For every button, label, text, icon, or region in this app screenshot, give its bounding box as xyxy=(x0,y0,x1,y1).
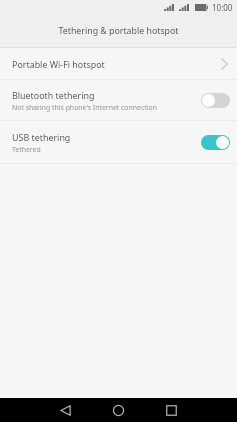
staticText: Portable Wi-Fi hotspot xyxy=(12,58,105,70)
button[interactable]: Open xyxy=(215,56,230,72)
button[interactable]: Bluetooth tethering xyxy=(0,80,237,120)
button[interactable]: Back xyxy=(50,398,80,422)
button[interactable]: Toggle on xyxy=(201,135,230,150)
button[interactable]: Toggle off xyxy=(201,93,230,108)
staticText: USB tethering xyxy=(12,131,71,143)
staticText: Not sharing this phone's Internet connec… xyxy=(12,103,157,112)
button[interactable]: Portable Wi-Fi hotspot xyxy=(0,48,237,79)
staticText: Tethering & portable hotspot xyxy=(58,25,179,37)
staticText: Tethered xyxy=(12,145,41,154)
button[interactable]: USB tethering xyxy=(0,121,237,163)
staticText: Bluetooth tethering xyxy=(12,89,95,101)
button[interactable]: Home xyxy=(103,398,133,422)
button[interactable]: Recents xyxy=(156,398,186,422)
staticText: 10:00 xyxy=(212,2,233,13)
